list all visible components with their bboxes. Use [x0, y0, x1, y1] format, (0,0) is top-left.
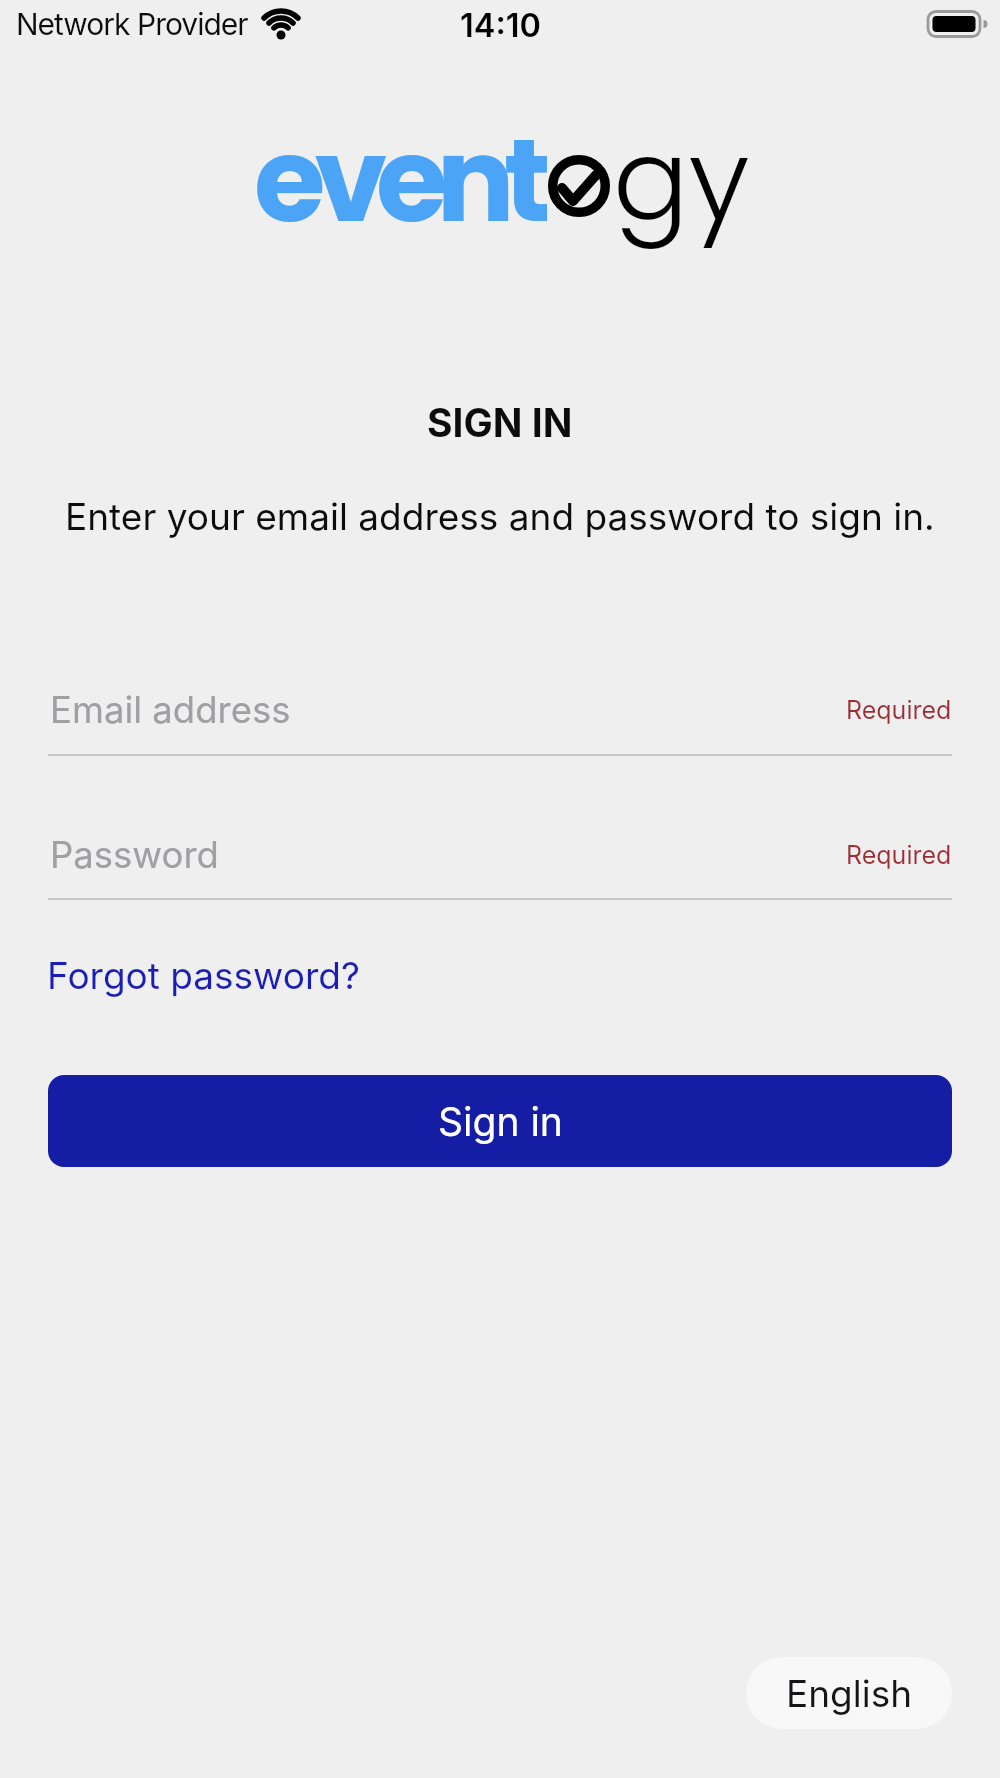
button[interactable]: Password [48, 815, 952, 895]
button[interactable]: Email address [48, 670, 952, 750]
staticText: Forgot password? [47, 953, 360, 998]
staticText: Network Provider [16, 6, 248, 42]
staticText: Enter your email address and password to… [65, 494, 935, 539]
staticText: event [254, 99, 540, 261]
staticText: English [786, 1671, 913, 1716]
staticText: Password [50, 833, 219, 877]
button[interactable]: English [746, 1657, 952, 1729]
staticText: Required [846, 840, 952, 870]
staticText: Required [846, 695, 952, 725]
staticText: Email address [50, 688, 291, 732]
button[interactable]: Sign in [48, 1075, 952, 1167]
staticText: gy [613, 101, 750, 258]
button[interactable]: Forgot password? [43, 945, 364, 1005]
staticText: 14:10 [460, 6, 541, 45]
staticText: Sign in [438, 1098, 563, 1145]
staticText: SIGN IN [427, 399, 573, 446]
